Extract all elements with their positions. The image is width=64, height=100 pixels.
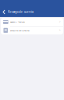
staticText: Recarga de cuenta [8, 10, 33, 14]
staticText: Efectivo en Oficina [10, 29, 29, 32]
button[interactable]: Efectivo en Oficina [1, 26, 63, 34]
button[interactable]: Back [1, 7, 6, 16]
staticText: > [59, 20, 61, 24]
staticText: > [59, 29, 61, 32]
staticText: Banco / Tarjeta [10, 21, 25, 23]
button[interactable]: Banco / Tarjeta [1, 18, 63, 26]
